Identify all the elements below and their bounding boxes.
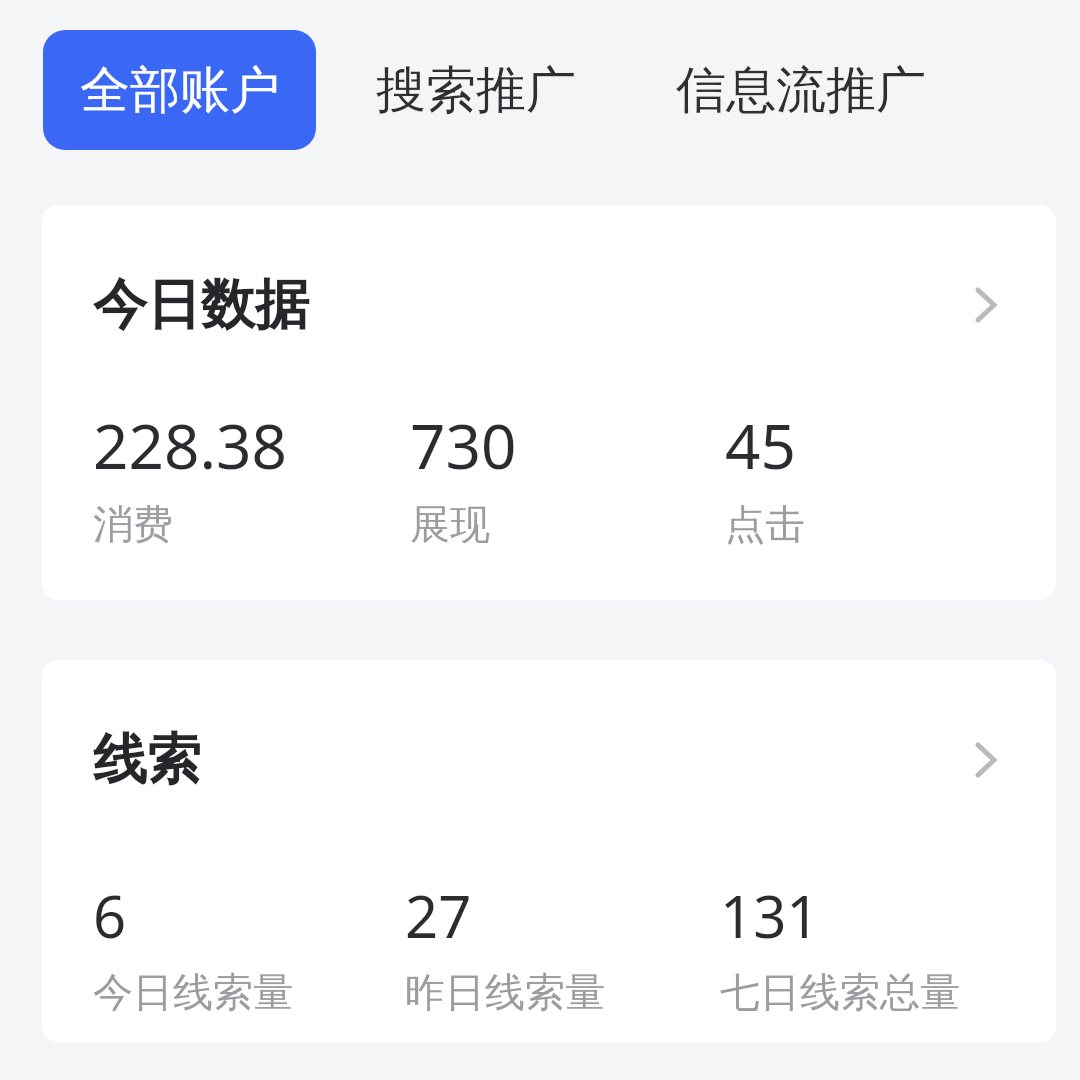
staticText: 全部账户	[80, 59, 280, 122]
button[interactable]: 今日数据	[42, 205, 1056, 600]
button[interactable]: 全部账户	[43, 30, 316, 150]
button[interactable]: 信息流推广	[672, 30, 930, 150]
staticText: 线索	[93, 726, 201, 794]
staticText: 27	[405, 876, 472, 955]
staticText: 45	[725, 403, 796, 487]
staticText: 展现	[410, 499, 490, 549]
staticText: 6	[93, 876, 127, 955]
staticText: 今日数据	[93, 271, 309, 339]
staticText: 消费	[93, 499, 173, 549]
staticText: 131	[720, 876, 820, 955]
staticText: 搜索推广	[376, 59, 576, 122]
button[interactable]: 查看详情	[948, 722, 1024, 798]
staticText: 228.38	[93, 403, 287, 487]
button[interactable]: 搜索推广	[372, 30, 580, 150]
staticText: 七日线索总量	[720, 967, 960, 1017]
staticText: 昨日线索量	[405, 967, 605, 1017]
staticText: 730	[410, 403, 517, 487]
staticText: 点击	[725, 499, 805, 549]
staticText: 信息流推广	[676, 59, 926, 122]
button[interactable]: 线索	[42, 660, 1056, 1042]
staticText: 今日线索量	[93, 967, 293, 1017]
button[interactable]: 查看详情	[948, 267, 1024, 343]
